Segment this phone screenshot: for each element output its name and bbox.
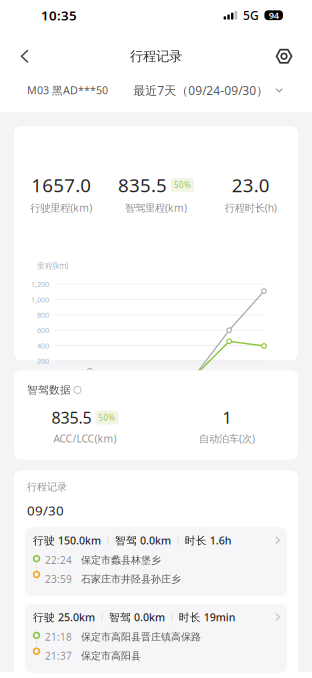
staticText: 自动泊车(次): [199, 431, 255, 446]
staticText: 400: [37, 341, 49, 351]
staticText: 行程记录: [27, 480, 67, 493]
button[interactable]: 行驶 150.0km: [25, 527, 287, 596]
staticText: 09/24: [46, 388, 64, 397]
staticText: 智驾数据: [27, 383, 71, 397]
staticText: 10:35: [41, 6, 77, 24]
staticText: 智驾 0.0km: [115, 533, 171, 547]
staticText: 智驾里程(km): [125, 201, 187, 215]
staticText: 行程时长(h): [225, 201, 277, 215]
staticText: 里程(km): [37, 260, 68, 271]
button[interactable]: 最近7天（09/24-09/30）: [133, 82, 283, 98]
staticText: 最近7天（09/24-09/30）: [133, 82, 268, 98]
staticText: 50%: [174, 179, 191, 190]
staticText: 时长 1.6h: [185, 533, 232, 547]
staticText: 835.5: [118, 172, 167, 198]
staticText: 835.5: [51, 407, 91, 428]
staticText: 94: [269, 9, 279, 22]
staticText: 600: [37, 325, 49, 335]
staticText: 23.0: [232, 172, 270, 198]
staticText: 09/25: [81, 388, 99, 397]
staticText: 5G: [243, 7, 259, 23]
staticText: 22:24: [45, 553, 72, 567]
staticText: 21:37: [45, 649, 72, 663]
staticText: M03 黑AD***50: [27, 83, 108, 97]
staticText: 50%: [98, 412, 115, 423]
button[interactable]: M03 黑AD***50: [27, 83, 108, 97]
staticText: 21:18: [45, 630, 72, 644]
staticText: 保定市蠡县林堡乡: [81, 554, 161, 566]
staticText: 保定市高阳县: [81, 650, 141, 662]
button[interactable]: Settings: [265, 37, 303, 75]
staticText: 行驶 25.0km: [33, 610, 95, 624]
staticText: 保定市高阳县晋庄镇高保路: [81, 630, 201, 643]
staticText: 1,000: [31, 295, 49, 305]
staticText: ACC/LCC(km): [53, 431, 116, 446]
button[interactable]: Back: [6, 37, 44, 75]
staticText: 行程记录: [130, 48, 182, 65]
staticText: 行驶里程: [109, 406, 149, 418]
staticText: 1657.0: [31, 172, 91, 198]
staticText: 200: [37, 356, 49, 366]
button[interactable]: 行驶 25.0km: [25, 604, 287, 673]
staticText: 行驶里程(km): [30, 201, 92, 215]
staticText: 1: [222, 407, 231, 428]
staticText: 行驶 150.0km: [33, 533, 101, 547]
staticText: 1,200: [31, 279, 49, 289]
staticText: 时长 19min: [179, 610, 236, 624]
staticText: 石家庄市井陉县孙庄乡: [81, 573, 181, 585]
staticText: 23:59: [45, 572, 72, 586]
staticText: 800: [37, 310, 49, 320]
staticText: 09/30: [27, 501, 64, 519]
staticText: 智驾 0.0km: [109, 610, 165, 624]
